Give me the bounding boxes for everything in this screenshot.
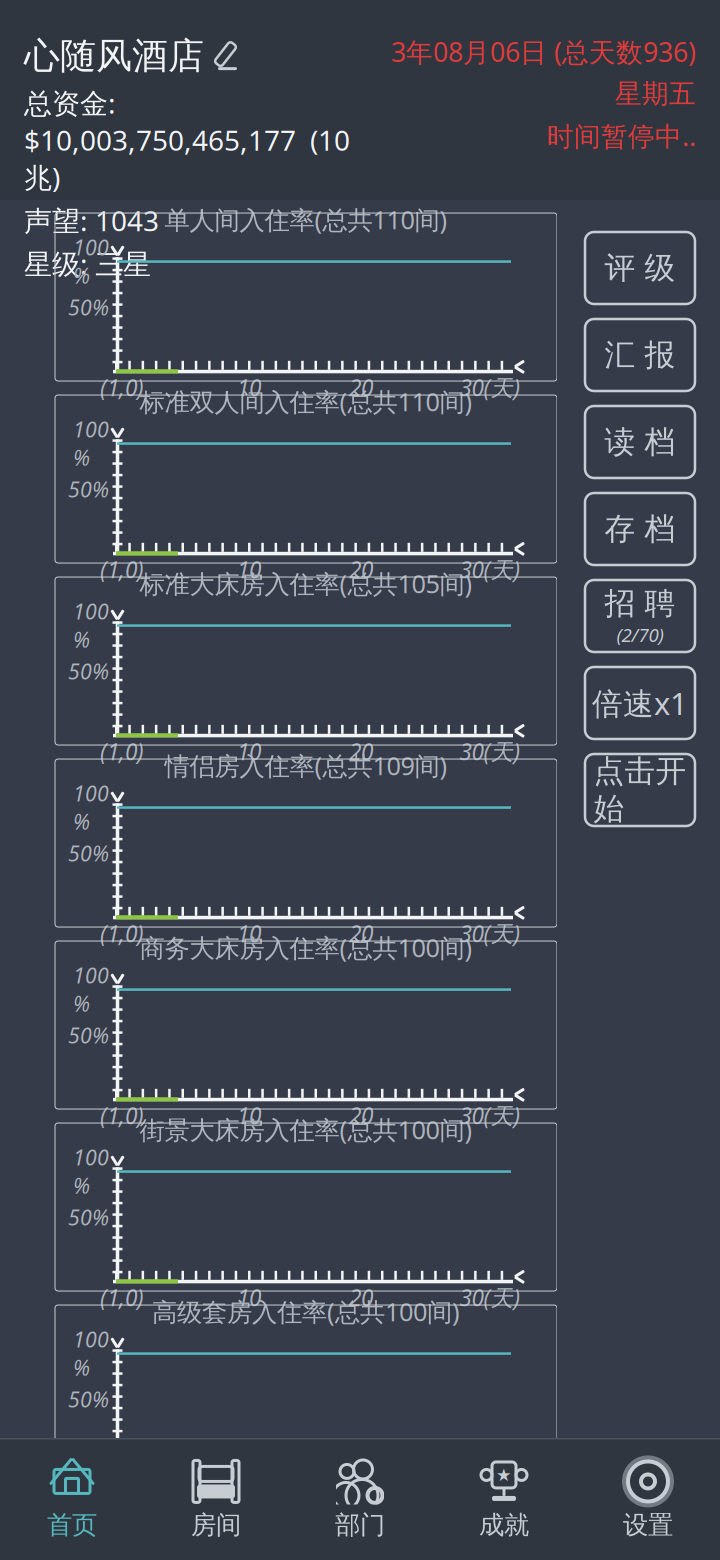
staticText: 3年08月06日 (总天数936) [391, 34, 696, 69]
staticText: 星级: 三星 [24, 245, 151, 282]
staticText: 20 [349, 736, 373, 766]
staticText: 标准大床房入住率(总共105间) [139, 567, 472, 600]
staticText: 10 [237, 1100, 261, 1130]
staticText: 10 [237, 736, 261, 766]
staticText: 10 [237, 918, 261, 948]
staticText: ★ [496, 1465, 512, 1485]
button[interactable]: 汇 报 [585, 319, 695, 391]
staticText: 10 [237, 1464, 261, 1494]
staticText: 30(天) [459, 1464, 520, 1494]
staticText: 存 档 [604, 510, 675, 548]
staticText: (1,0) [100, 1100, 144, 1130]
staticText: 成就 [479, 1509, 529, 1540]
button[interactable]: 倍速x1 [585, 667, 695, 739]
button[interactable]: 招 聘 [585, 580, 695, 652]
button[interactable]: 存 档 [585, 493, 695, 565]
button[interactable]: 设置 [576, 1451, 720, 1547]
staticText: 100% [73, 597, 109, 654]
staticText: 声望: 1043 [24, 202, 159, 239]
staticText: 50% [68, 293, 109, 321]
staticText: 情侣房入住率(总共109间) [164, 749, 447, 782]
staticText: 10 [237, 1282, 261, 1312]
staticText: 20 [349, 1464, 373, 1494]
staticText: 倍速x1 [592, 683, 688, 723]
button[interactable]: 读 档 [585, 406, 695, 478]
staticText: 汇 报 [604, 336, 675, 374]
staticText: 时间暂停中.. [547, 118, 696, 154]
staticText: 20 [349, 1100, 373, 1130]
staticText: 点击开始 [593, 752, 686, 828]
staticText: 评 级 [604, 249, 675, 287]
button[interactable]: 评 级 [585, 232, 695, 304]
button[interactable]: 点击开始 [585, 754, 695, 826]
staticText: 50% [68, 839, 109, 867]
staticText: 50% [68, 475, 109, 503]
staticText: 10 [237, 372, 261, 402]
staticText: 100% [73, 779, 109, 836]
staticText: 单人间入住率(总共110间) [164, 203, 447, 236]
staticText: 20 [349, 372, 373, 402]
staticText: 50% [68, 1021, 109, 1049]
staticText: 首页 [47, 1509, 97, 1540]
staticText: 20 [349, 554, 373, 584]
staticText: 街景大床房入住率(总共100间) [139, 1113, 472, 1146]
staticText: 总资金: $10,003,750,465,177 (10兆) [24, 84, 350, 196]
staticText: 30(天) [459, 736, 520, 766]
staticText: (1,0) [100, 372, 144, 402]
staticText: (1,0) [100, 1282, 144, 1312]
staticText: 招 聘 [604, 585, 675, 622]
staticText: 高级套房入住率(总共100间) [152, 1295, 460, 1328]
staticText: 星期五 [615, 77, 696, 110]
button[interactable]: 部门 [288, 1451, 432, 1547]
staticText: 商务大床房入住率(总共100间) [139, 931, 472, 964]
staticText: 30(天) [459, 372, 520, 402]
button[interactable]: 房间 [144, 1451, 288, 1547]
button[interactable]: ★ [432, 1451, 576, 1547]
staticText: 部门 [335, 1509, 385, 1540]
staticText: 30(天) [459, 918, 520, 948]
staticText: 20 [349, 918, 373, 948]
staticText: 房间 [191, 1509, 241, 1540]
staticText: 50% [68, 657, 109, 685]
staticText: 50% [68, 1203, 109, 1231]
staticText: 100% [73, 961, 109, 1018]
staticText: 30(天) [459, 554, 520, 584]
button[interactable]: 重命名酒店 [214, 41, 244, 71]
staticText: 30(天) [459, 1282, 520, 1312]
staticText: 100% [73, 1325, 109, 1382]
staticText: 读 档 [604, 423, 675, 461]
staticText: 100% [73, 1143, 109, 1200]
staticText: 50% [68, 1385, 109, 1413]
staticText: (2/70) [616, 622, 663, 647]
staticText: 100% [73, 233, 109, 290]
button[interactable]: 首页 [0, 1451, 144, 1547]
staticText: 20 [349, 1282, 373, 1312]
staticText: 设置 [623, 1509, 673, 1540]
staticText: (1,0) [100, 554, 144, 584]
staticText: 10 [237, 554, 261, 584]
staticText: (1,0) [100, 736, 144, 766]
staticText: 标准双人间入住率(总共110间) [139, 385, 472, 418]
staticText: 100% [73, 415, 109, 472]
staticText: 30(天) [459, 1100, 520, 1130]
staticText: 心随风酒店 [24, 34, 204, 78]
staticText: (1,0) [100, 918, 144, 948]
